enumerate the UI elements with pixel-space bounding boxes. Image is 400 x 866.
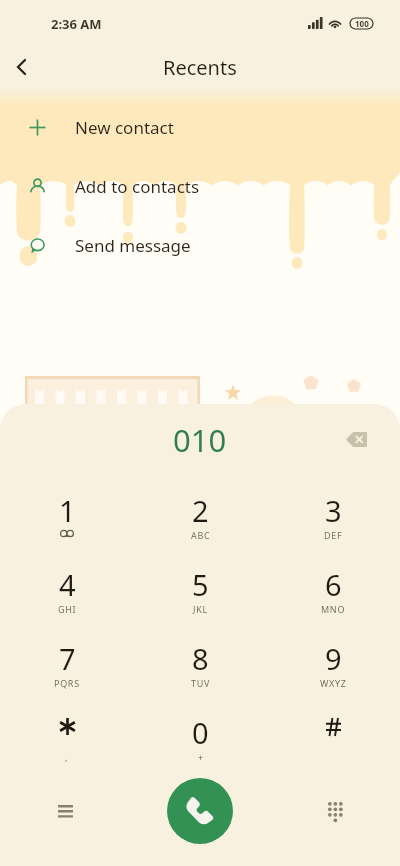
button[interactable]: Back — [0, 46, 42, 88]
staticText: GHI — [58, 603, 77, 615]
staticText: Recents — [163, 54, 237, 81]
staticText: 2 — [192, 491, 209, 530]
staticText: 2:36 AM — [51, 15, 102, 33]
staticText: , — [65, 751, 69, 763]
staticText: 0 — [192, 713, 209, 752]
button[interactable]: Menu — [45, 791, 85, 831]
staticText: + — [198, 751, 204, 763]
button[interactable]: 2 — [134, 474, 267, 548]
button[interactable]: Send message — [0, 216, 400, 275]
button[interactable]: 8 — [134, 622, 267, 696]
button[interactable]: 6 — [267, 548, 400, 622]
button[interactable]: , — [0, 696, 134, 770]
staticText: 3 — [325, 491, 342, 530]
button[interactable]: Add to contacts — [0, 157, 400, 216]
button[interactable]: 4 — [0, 548, 134, 622]
staticText: MNO — [321, 603, 346, 615]
staticText: WXYZ — [320, 677, 347, 689]
staticText: PQRS — [54, 677, 80, 689]
staticText: 9 — [325, 639, 342, 678]
staticText: 1 — [59, 491, 76, 530]
button[interactable]: 7 — [0, 622, 134, 696]
button[interactable]: Call — [167, 778, 233, 844]
staticText: New contact — [75, 116, 174, 139]
staticText: 4 — [59, 565, 76, 604]
button[interactable]: 5 — [134, 548, 267, 622]
staticText: DEF — [324, 529, 343, 541]
staticText: 7 — [59, 639, 76, 678]
button[interactable]: 3 — [267, 474, 400, 548]
staticText: Send message — [75, 234, 191, 257]
staticText: 100 — [355, 18, 369, 29]
staticText: 8 — [192, 639, 209, 678]
button[interactable]: 1 — [0, 474, 134, 548]
staticText: JKL — [193, 603, 208, 615]
staticText: 010 — [173, 419, 227, 461]
staticText: TUV — [191, 677, 211, 689]
button[interactable] — [267, 696, 400, 770]
staticText: ABC — [191, 529, 211, 541]
staticText: 5 — [192, 565, 209, 604]
button[interactable]: New contact — [0, 98, 400, 157]
button[interactable]: 9 — [267, 622, 400, 696]
button[interactable]: 0 — [134, 696, 267, 770]
button[interactable]: Backspace — [338, 421, 374, 457]
staticText: Add to contacts — [75, 175, 200, 198]
staticText: 6 — [325, 565, 342, 604]
button[interactable]: Keypad — [315, 791, 355, 831]
